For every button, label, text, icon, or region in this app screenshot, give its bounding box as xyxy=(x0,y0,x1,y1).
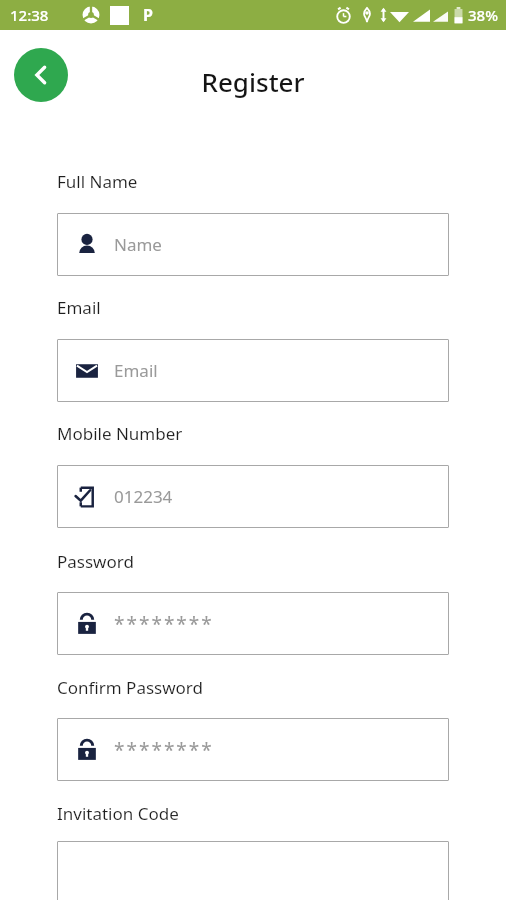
staticText: ******** xyxy=(114,737,214,763)
staticText: 12:38 xyxy=(10,5,49,25)
staticText: Name xyxy=(114,233,162,256)
staticText: Email xyxy=(57,296,101,319)
staticText: Register xyxy=(0,64,506,99)
staticText: Invitation Code xyxy=(57,802,179,825)
button[interactable]: ******** xyxy=(57,718,449,781)
button[interactable]: 012234 xyxy=(57,465,449,528)
button[interactable] xyxy=(57,841,449,900)
button[interactable]: ******** xyxy=(57,592,449,655)
staticText: ******** xyxy=(114,611,214,637)
staticText: Email xyxy=(114,359,158,382)
staticText: Full Name xyxy=(57,170,138,193)
staticText: 012234 xyxy=(114,485,173,508)
button[interactable]: Name xyxy=(57,213,449,276)
button[interactable]: Email xyxy=(57,339,449,402)
staticText: 38% xyxy=(468,5,498,25)
staticText: P xyxy=(143,4,153,26)
staticText: Mobile Number xyxy=(57,422,183,445)
staticText: Confirm Password xyxy=(57,676,203,699)
button[interactable]: Back xyxy=(14,48,68,102)
staticText: Password xyxy=(57,550,134,573)
